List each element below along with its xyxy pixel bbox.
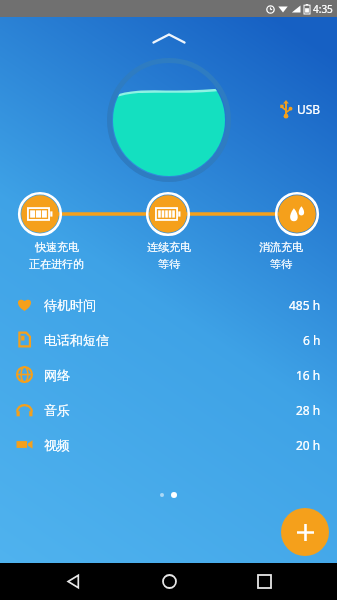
- button[interactable]: Continuous charging: [146, 192, 190, 236]
- staticText: 6 h: [303, 332, 321, 348]
- staticText: 视频: [44, 437, 70, 453]
- button[interactable]: Back: [50, 563, 96, 600]
- staticText: 连续充电: [147, 240, 191, 254]
- staticText: 电话和短信: [44, 332, 109, 348]
- button[interactable]: 网络: [0, 357, 337, 392]
- button[interactable]: Trickle charging: [275, 192, 319, 236]
- button[interactable]: Collapse: [143, 27, 195, 49]
- button[interactable]: 连续充电: [113, 240, 225, 271]
- staticText: 网络: [44, 367, 70, 383]
- button[interactable]: Recents: [241, 563, 287, 600]
- button[interactable]: Fast charging: [18, 192, 62, 236]
- button[interactable]: 电话和短信: [0, 322, 337, 357]
- button[interactable]: 音乐: [0, 392, 337, 427]
- button[interactable]: Add: [281, 508, 329, 556]
- button[interactable]: 视频: [0, 427, 337, 462]
- staticText: 4:35: [313, 2, 333, 16]
- button[interactable]: 待机时间: [0, 287, 337, 322]
- staticText: 16 h: [296, 367, 321, 383]
- button[interactable]: Home: [146, 563, 192, 600]
- button[interactable]: USB: [280, 100, 321, 118]
- staticText: 正在进行的: [29, 257, 84, 271]
- button[interactable]: Battery level: [107, 58, 231, 182]
- staticText: 485 h: [289, 297, 321, 313]
- staticText: 等待: [158, 257, 180, 271]
- button[interactable]: 消流充电: [225, 240, 337, 271]
- staticText: 等待: [270, 257, 292, 271]
- staticText: 20 h: [296, 437, 321, 453]
- staticText: 音乐: [44, 402, 70, 418]
- staticText: 28 h: [296, 402, 321, 418]
- button[interactable]: 快速充电: [0, 240, 113, 271]
- staticText: 快速充电: [35, 240, 79, 254]
- staticText: 消流充电: [259, 240, 303, 254]
- staticText: 待机时间: [44, 297, 96, 313]
- staticText: USB: [297, 101, 321, 117]
